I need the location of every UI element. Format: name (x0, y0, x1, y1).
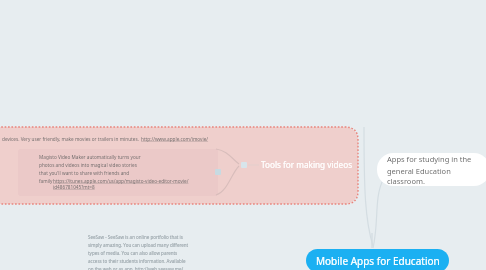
button[interactable]: https://itunes.apple.com/us/app/magisto-… (53, 178, 218, 190)
staticText: family (39, 178, 53, 184)
button[interactable]: http://www.apple.com/imovie/ (141, 136, 209, 142)
staticText: devices. Very user friendly, make movies… (2, 136, 141, 142)
button[interactable]: Mobile Apps for Education (306, 249, 449, 270)
staticText: general Education classroom. (387, 166, 486, 186)
staticText: Tools for making videos (261, 159, 353, 170)
staticText: types of media. You can also allow paren… (88, 250, 178, 256)
staticText: SeeSaw - SeeSaw is an online portfolio t… (88, 234, 183, 240)
button[interactable]: Apps for studying in the (377, 153, 486, 186)
staticText: access to their students information. Av… (88, 258, 186, 264)
staticText: photos and videos into magical video sto… (39, 162, 137, 168)
staticText: that you'll want to share with friends a… (39, 170, 130, 176)
button[interactable]: Tools for making videos (259, 157, 355, 172)
staticText: Magisto Video Maker automatically turns … (39, 154, 141, 160)
staticText: Mobile Apps for Education (316, 254, 440, 268)
staticText: simply amazing. You can upload many diff… (88, 242, 189, 248)
staticText: Apps for studying in the (387, 154, 472, 164)
staticText: on the web or as app. http://web.seesaw.… (88, 266, 184, 270)
button[interactable]: Magisto Video Maker automatically turns … (18, 149, 218, 196)
button[interactable]: SeeSaw - SeeSaw is an online portfolio t… (88, 234, 189, 270)
button[interactable] (0, 127, 358, 204)
